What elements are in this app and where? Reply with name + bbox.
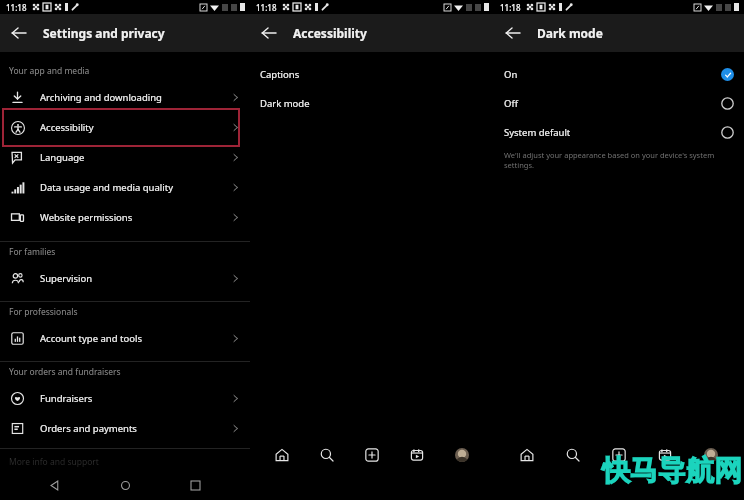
- staticText: 11:18: [256, 2, 277, 13]
- button[interactable]: Back: [45, 475, 65, 495]
- button[interactable]: Website permissions: [0, 202, 250, 232]
- button[interactable]: Profile: [698, 442, 724, 468]
- button[interactable]: Archiving and downloading: [0, 82, 250, 112]
- staticText: Captions: [260, 68, 300, 81]
- staticText: For families: [9, 246, 56, 258]
- button[interactable]: Captions: [250, 60, 494, 89]
- button[interactable]: Language: [0, 142, 250, 172]
- staticText: 快马导航网: [602, 453, 742, 488]
- button[interactable]: Off: [494, 89, 744, 118]
- staticText: Dark mode: [260, 97, 310, 110]
- button[interactable]: Recents: [185, 475, 205, 495]
- button[interactable]: Search: [314, 442, 340, 468]
- staticText: Off: [504, 97, 518, 110]
- button[interactable]: System default: [494, 118, 744, 147]
- button[interactable]: Back: [499, 19, 527, 47]
- button[interactable]: Search: [560, 442, 586, 468]
- staticText: More info and support: [9, 456, 99, 468]
- staticText: For professionals: [9, 306, 78, 318]
- button[interactable]: Back: [5, 19, 33, 47]
- button[interactable]: Fundraisers: [0, 383, 250, 413]
- staticText: Orders and payments: [40, 422, 137, 435]
- button[interactable]: Dark mode: [250, 89, 494, 118]
- button[interactable]: Reels: [652, 442, 678, 468]
- staticText: Fundraisers: [40, 392, 93, 405]
- button[interactable]: Create: [606, 442, 632, 468]
- staticText: Archiving and downloading: [40, 91, 162, 104]
- staticText: 11:18: [6, 2, 27, 13]
- button[interactable]: Home: [514, 442, 540, 468]
- button[interactable]: Create: [359, 442, 385, 468]
- staticText: Accessibility: [40, 121, 94, 134]
- staticText: Dark mode: [537, 25, 603, 41]
- staticText: Accessibility: [293, 25, 367, 41]
- button[interactable]: Home: [115, 475, 135, 495]
- staticText: Settings and privacy: [43, 25, 165, 41]
- button[interactable]: Profile: [449, 442, 475, 468]
- staticText: System default: [504, 126, 571, 139]
- staticText: Data usage and media quality: [40, 181, 173, 194]
- button[interactable]: Data usage and media quality: [0, 172, 250, 202]
- button[interactable]: Accessibility: [0, 112, 250, 142]
- staticText: Your app and media: [9, 65, 90, 77]
- staticText: 11:18: [500, 2, 521, 13]
- staticText: Language: [40, 151, 85, 164]
- staticText: Your orders and fundraisers: [9, 366, 121, 378]
- button[interactable]: Orders and payments: [0, 413, 250, 443]
- button[interactable]: On: [494, 60, 744, 89]
- staticText: Supervision: [40, 272, 93, 285]
- staticText: On: [504, 68, 518, 81]
- button[interactable]: Account type and tools: [0, 323, 250, 353]
- staticText: Website permissions: [40, 211, 133, 224]
- staticText: We'll adjust your appearance based on yo…: [504, 150, 738, 170]
- button[interactable]: Supervision: [0, 263, 250, 293]
- button[interactable]: Reels: [404, 442, 430, 468]
- button[interactable]: Home: [269, 442, 295, 468]
- button[interactable]: Back: [255, 19, 283, 47]
- staticText: Account type and tools: [40, 332, 142, 345]
